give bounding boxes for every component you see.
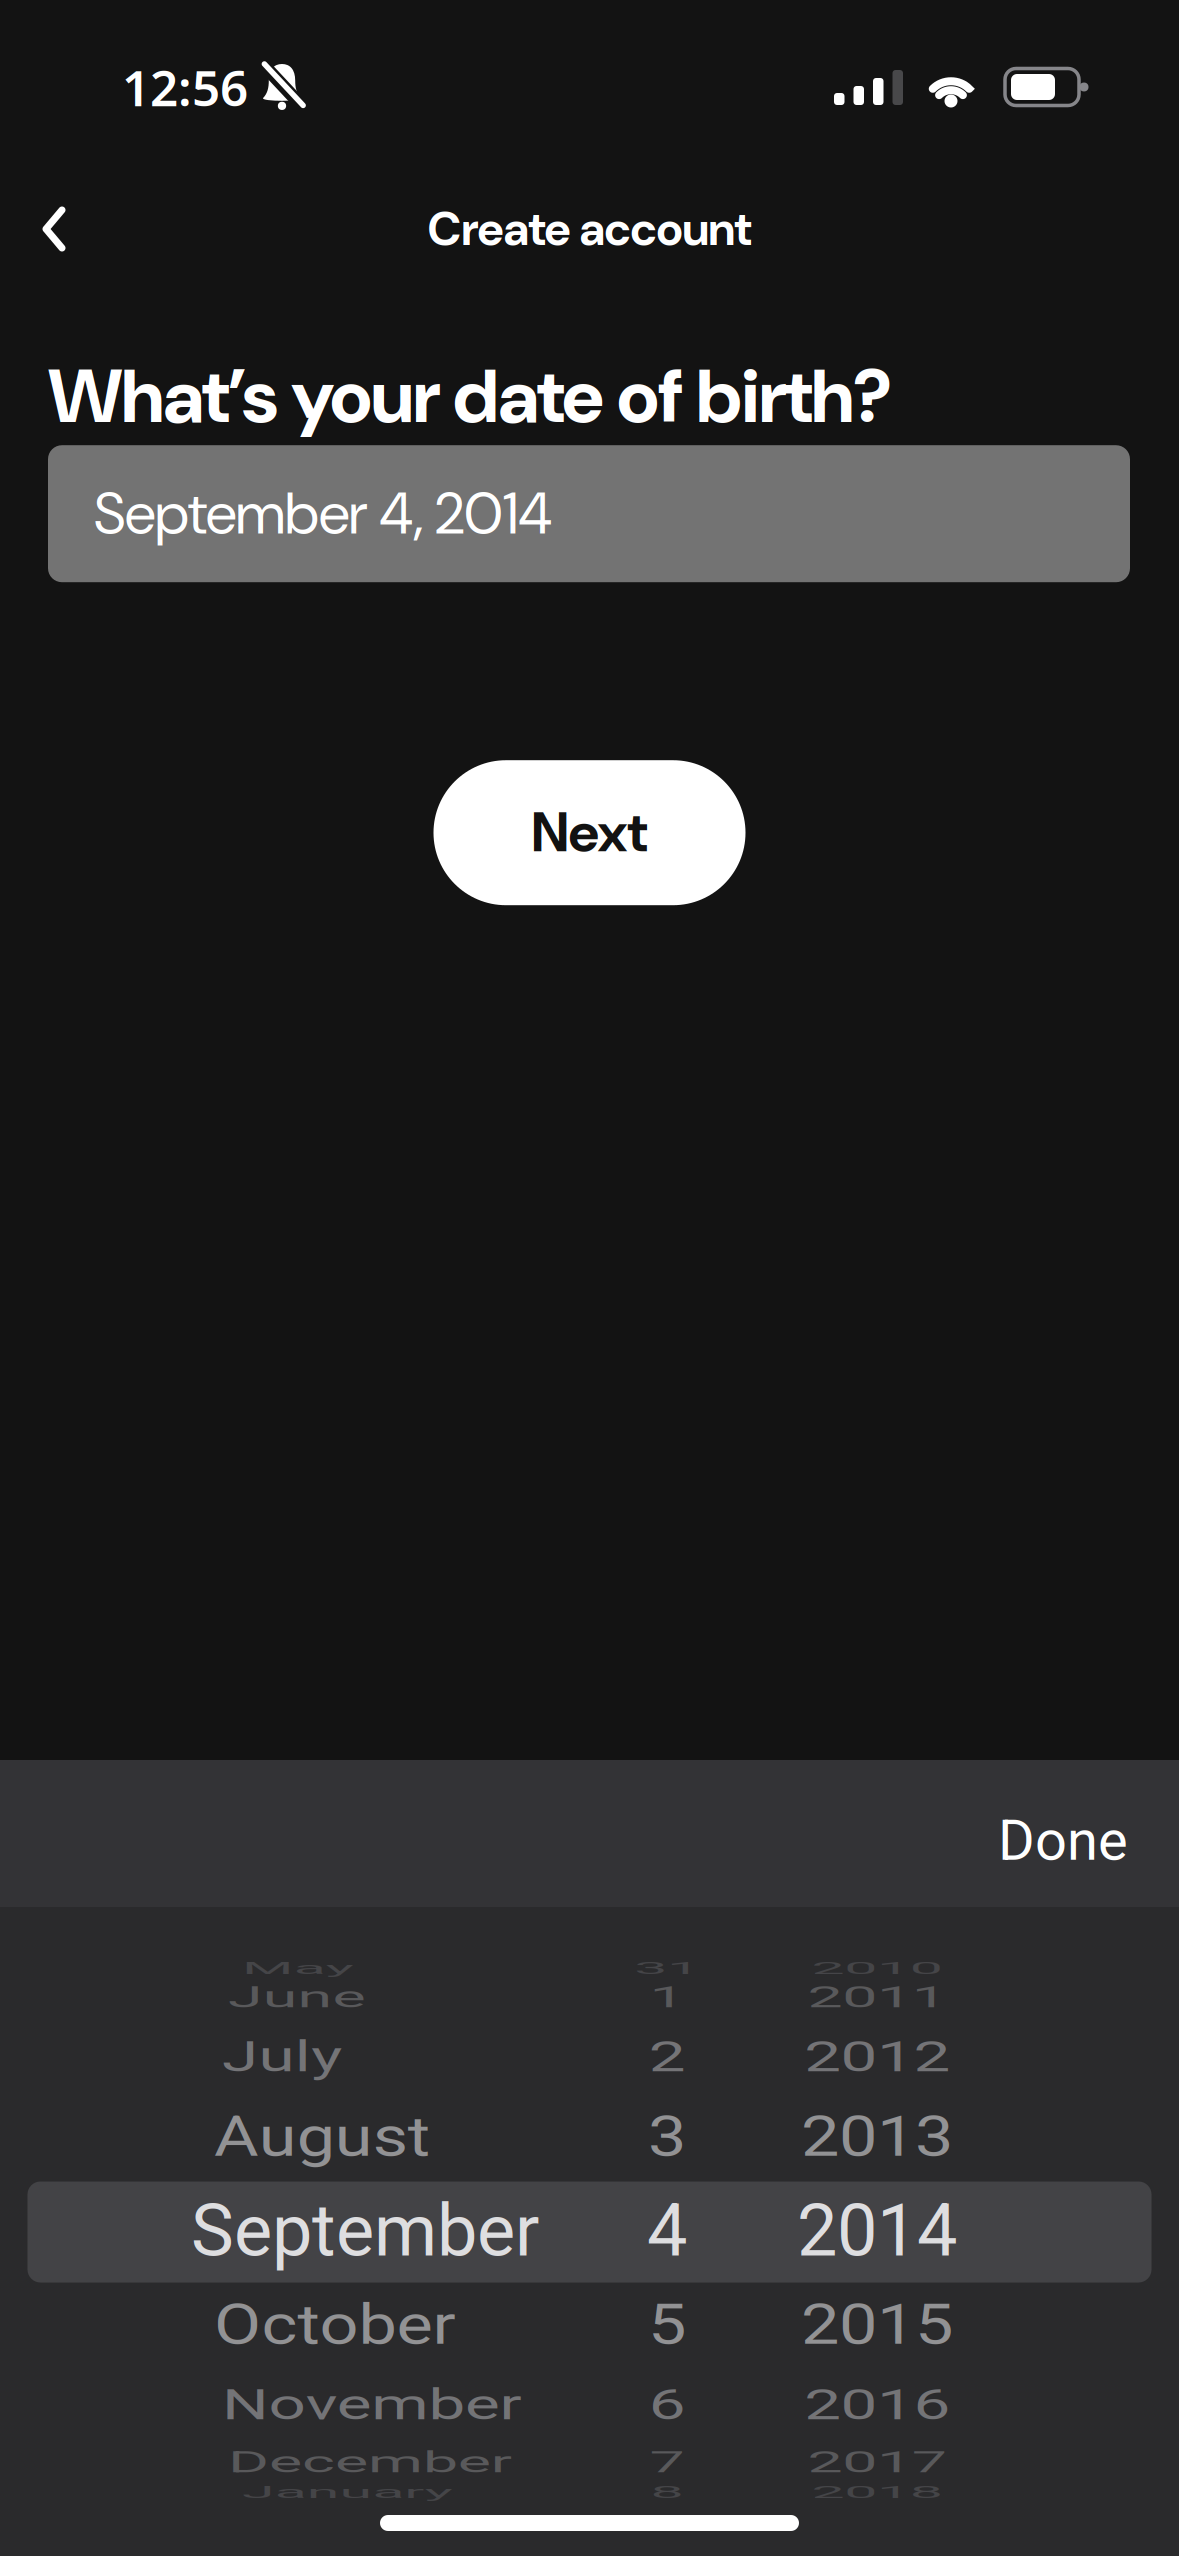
staticText: Next xyxy=(531,797,647,868)
staticText: 2014 xyxy=(797,2189,957,2273)
staticText: Create account xyxy=(427,199,751,259)
staticText: 2 xyxy=(647,2015,687,2099)
staticText: December xyxy=(193,2420,519,2504)
staticText: 2011 xyxy=(797,1955,957,2039)
staticText: September 4, 2014 xyxy=(94,476,552,551)
staticText: 3 xyxy=(647,2095,687,2179)
staticText: 2016 xyxy=(797,2363,957,2447)
staticText: October xyxy=(200,2283,454,2367)
staticText: May xyxy=(193,1926,329,2010)
staticText: Done xyxy=(998,1808,1128,1873)
staticText: 6 xyxy=(647,2363,687,2447)
staticText: 12:56 xyxy=(122,54,248,120)
staticText: 8 xyxy=(647,2450,687,2534)
staticText: November xyxy=(198,2363,527,2447)
staticText: September xyxy=(191,2189,539,2273)
button[interactable]: Date of birth, September 4, 2014 xyxy=(48,445,1130,582)
staticText: 2012 xyxy=(797,2015,957,2099)
button[interactable]: Back xyxy=(0,190,92,268)
button[interactable]: Next xyxy=(433,760,745,905)
staticText: 2010 xyxy=(797,1926,957,2010)
staticText: 2015 xyxy=(797,2283,957,2367)
staticText: 4 xyxy=(647,2189,687,2273)
staticText: 7 xyxy=(647,2420,687,2504)
button[interactable]: Done xyxy=(998,1794,1179,1873)
staticText: 2013 xyxy=(797,2095,957,2179)
staticText: August xyxy=(200,2095,428,2179)
staticText: June xyxy=(193,1955,351,2039)
staticText: 2017 xyxy=(797,2420,957,2504)
staticText: 31 xyxy=(627,1926,707,2010)
staticText: What’s your date of birth? xyxy=(48,348,893,445)
staticText: July xyxy=(198,2015,330,2099)
staticText: January xyxy=(193,2450,450,2534)
staticText: 2018 xyxy=(797,2450,957,2534)
staticText: 1 xyxy=(647,1955,687,2039)
staticText: 5 xyxy=(647,2283,687,2367)
